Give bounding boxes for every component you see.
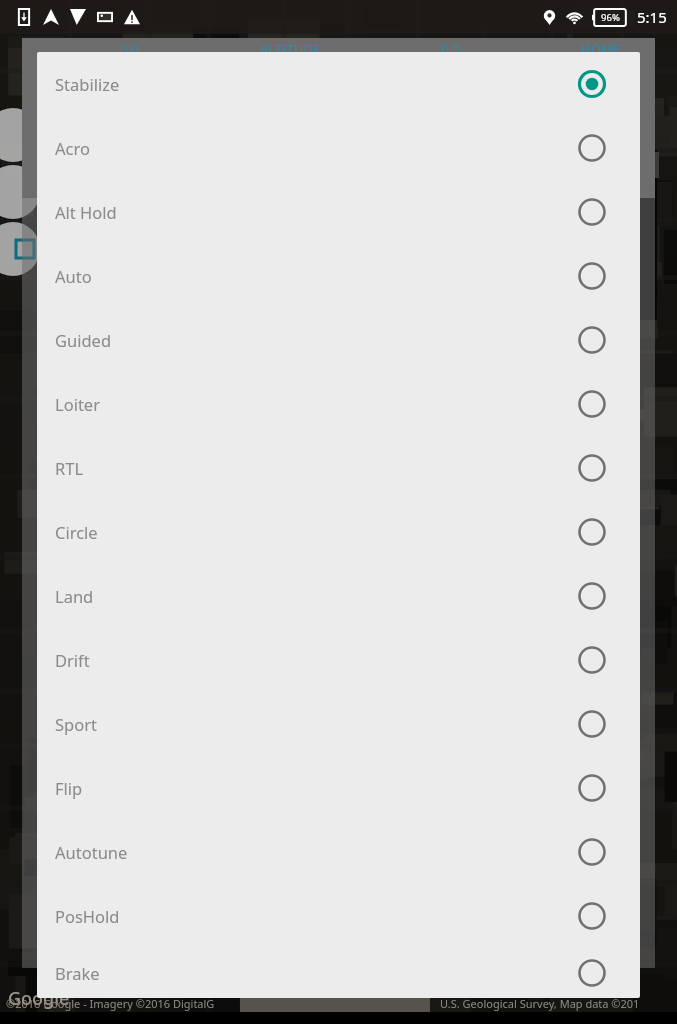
staticText: 0.0 [441,40,460,58]
staticText: E [642,180,650,199]
staticText: PosHold [55,905,577,927]
button[interactable]: Sport [37,692,640,756]
staticText: Brake [55,962,577,984]
button[interactable]: Acro [37,116,640,180]
staticText: Auto [55,265,577,287]
button[interactable]: Compass [0,108,40,162]
button[interactable]: Guided [37,308,640,372]
staticText: Acro [55,137,577,159]
staticText: Sport [55,713,577,735]
staticText: Drift [55,649,577,671]
staticText: Alt Hold [55,201,577,223]
staticText: RTL [55,457,577,479]
button[interactable]: Alt Hold [37,180,640,244]
button[interactable]: PosHold [37,884,640,948]
staticText: Loiter [55,393,577,415]
button[interactable]: Circle [37,500,640,564]
staticText: 0.0 [120,40,139,58]
staticText: Autotune [55,841,577,863]
staticText: 96% [601,11,620,24]
button[interactable]: My location [0,222,40,276]
button[interactable]: Stabilize [37,52,640,116]
staticText: ALTITUDE [260,40,320,58]
button[interactable]: Land [37,564,640,628]
staticText: U.S. Geological Survey, Map data ©201 [440,996,640,1011]
button[interactable]: Loiter [37,372,640,436]
staticText: Circle [55,521,577,543]
button[interactable]: Autotune [37,820,640,884]
staticText: Google [8,986,70,1011]
staticText: Flip [55,777,577,799]
button[interactable]: Brake [37,948,640,998]
button[interactable]: Auto [37,244,640,308]
button[interactable]: Drift [37,628,640,692]
staticText: Guided [55,329,577,351]
staticText: Land [55,585,577,607]
staticText: ©2016 Google - Imagery ©2016 DigitalG [6,996,215,1011]
button[interactable]: Flip [37,756,640,820]
staticText: Stabilize [55,73,577,95]
staticText: HOME [581,40,620,58]
button[interactable]: RTL [37,436,640,500]
button[interactable]: More options [641,152,659,178]
staticText: 5:15 [637,7,667,27]
button[interactable]: Layers [0,165,40,219]
